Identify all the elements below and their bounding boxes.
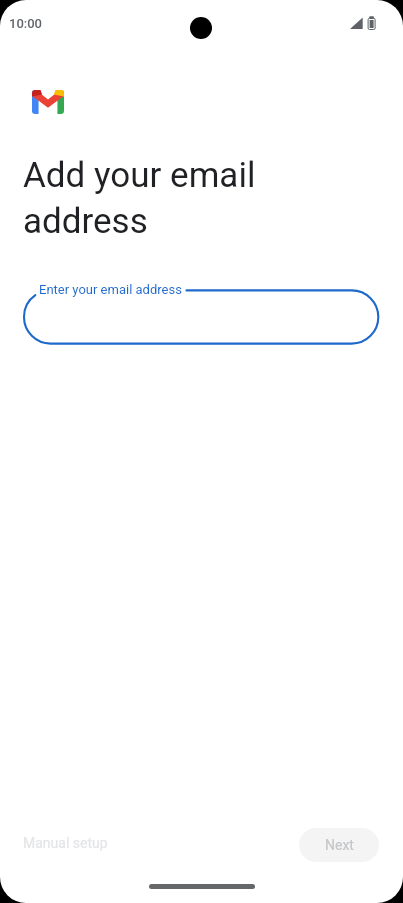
staticText: Enter your email address	[39, 282, 182, 297]
staticText: Manual setup	[23, 835, 108, 851]
staticText: Add your email address	[23, 150, 256, 242]
button[interactable]: Manual setup	[12, 827, 119, 859]
other: Gmail	[32, 90, 64, 114]
button[interactable]: Next	[299, 828, 379, 862]
staticText: Next	[325, 837, 354, 853]
staticText: 10:00	[9, 16, 42, 31]
button[interactable]	[24, 290, 378, 343]
